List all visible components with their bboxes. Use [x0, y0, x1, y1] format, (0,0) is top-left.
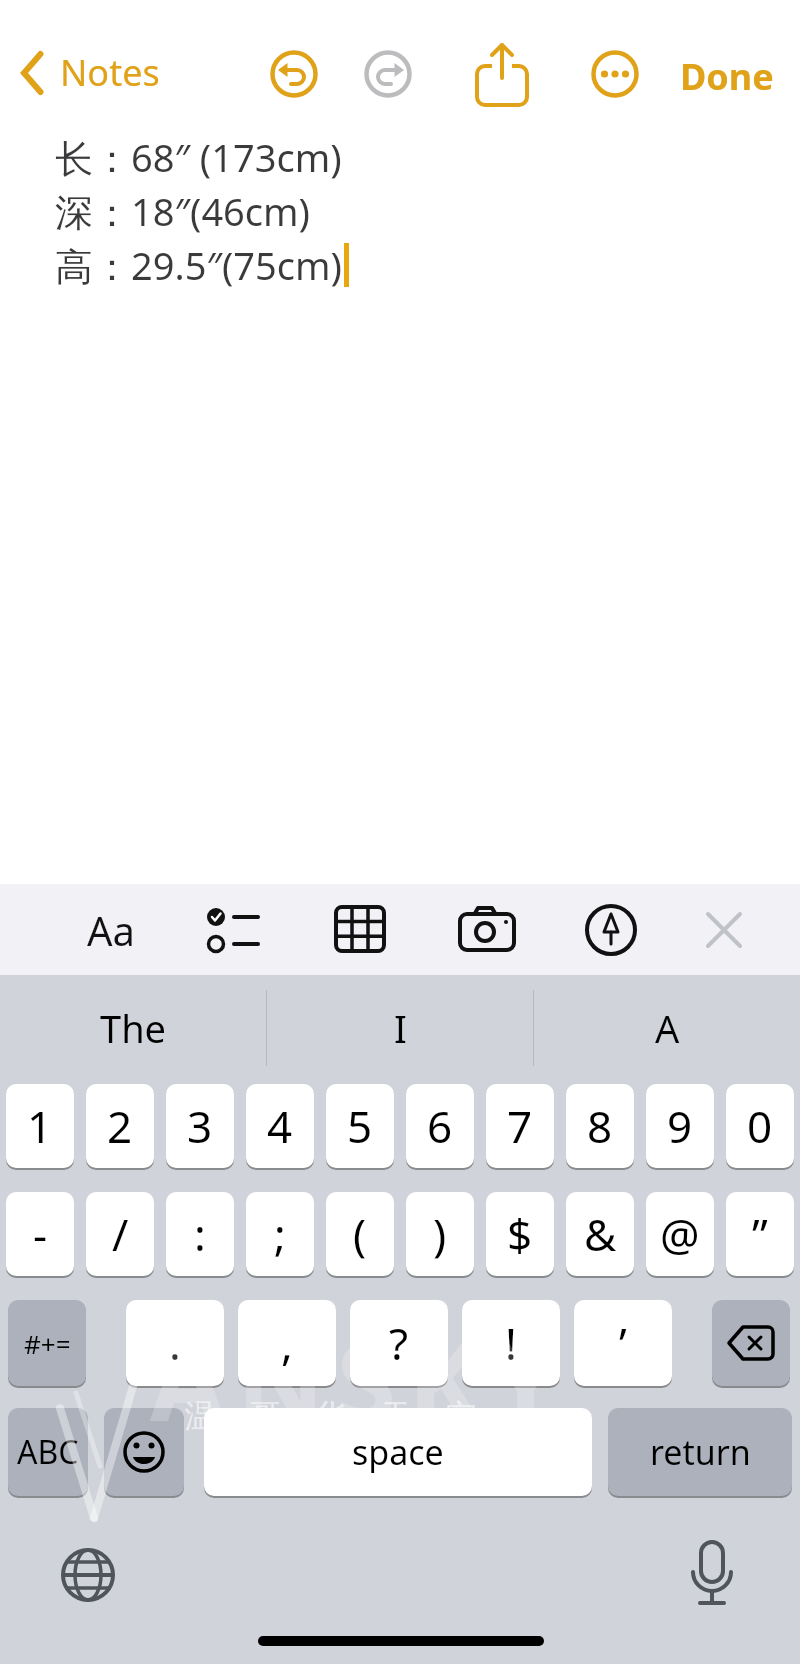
staticText: ’ — [619, 1313, 627, 1373]
staticText: ABC — [17, 1430, 79, 1474]
button[interactable]: 2 — [86, 1084, 154, 1170]
staticText: Done — [680, 52, 774, 101]
button[interactable] — [364, 50, 412, 98]
button[interactable]: - — [6, 1192, 74, 1278]
button[interactable] — [458, 906, 516, 952]
button[interactable]: The — [0, 988, 266, 1068]
staticText: Notes — [60, 48, 160, 97]
button[interactable] — [704, 910, 744, 950]
button[interactable]: ABC — [8, 1408, 88, 1498]
button[interactable]: ) — [406, 1192, 474, 1278]
button[interactable]: 7 — [486, 1084, 554, 1170]
button[interactable]: I — [267, 988, 533, 1068]
button[interactable] — [334, 905, 386, 953]
staticText: 0 — [747, 1096, 773, 1156]
staticText: 9 — [667, 1096, 693, 1156]
staticText: space — [352, 1429, 444, 1475]
button[interactable]: A — [534, 988, 800, 1068]
button[interactable]: 4 — [246, 1084, 314, 1170]
button[interactable]: ( — [326, 1192, 394, 1278]
button[interactable]: Notes — [18, 48, 160, 97]
button[interactable]: #+= — [8, 1300, 86, 1388]
staticText: 2 — [107, 1096, 133, 1156]
staticText: , — [281, 1313, 293, 1373]
staticText: ) — [433, 1204, 447, 1264]
staticText: Aa — [87, 903, 135, 957]
staticText: 温哥华天空 — [168, 1396, 493, 1436]
staticText: 长：68″ (173cm) — [55, 131, 342, 183]
button[interactable]: ! — [462, 1300, 560, 1388]
staticText: / — [112, 1204, 129, 1264]
staticText: . — [169, 1313, 181, 1373]
staticText: @ — [660, 1204, 700, 1264]
button[interactable]: 5 — [326, 1084, 394, 1170]
button[interactable] — [104, 1408, 184, 1498]
button[interactable] — [270, 50, 318, 98]
button[interactable]: : — [166, 1192, 234, 1278]
button[interactable]: & — [566, 1192, 634, 1278]
staticText: 7 — [507, 1096, 533, 1156]
button[interactable]: 9 — [646, 1084, 714, 1170]
staticText: #+= — [24, 1326, 71, 1361]
button[interactable] — [474, 42, 530, 108]
staticText: 3 — [187, 1096, 213, 1156]
staticText: ( — [353, 1204, 367, 1264]
staticText: - — [33, 1204, 48, 1264]
staticText: ANSKY — [150, 1306, 572, 1453]
staticText: $ — [507, 1204, 533, 1264]
button[interactable] — [687, 1540, 737, 1610]
button[interactable]: ? — [350, 1300, 448, 1388]
button[interactable] — [585, 904, 637, 956]
button[interactable]: $ — [486, 1192, 554, 1278]
button[interactable]: Done — [680, 52, 774, 101]
staticText: ! — [505, 1313, 517, 1373]
staticText: The — [100, 1002, 167, 1054]
button[interactable]: space — [204, 1408, 592, 1498]
button[interactable] — [591, 50, 639, 98]
staticText: 1 — [27, 1096, 53, 1156]
staticText: ? — [389, 1313, 409, 1373]
button[interactable]: 8 — [566, 1084, 634, 1170]
button[interactable] — [712, 1300, 790, 1388]
button[interactable]: 0 — [726, 1084, 794, 1170]
staticText: 4 — [267, 1096, 293, 1156]
staticText: return — [650, 1429, 751, 1475]
button[interactable]: return — [608, 1408, 792, 1498]
button[interactable]: 1 — [6, 1084, 74, 1170]
staticText: 6 — [427, 1096, 453, 1156]
button[interactable]: . — [126, 1300, 224, 1388]
button[interactable]: Aa — [83, 900, 139, 960]
staticText: 5 — [347, 1096, 373, 1156]
button[interactable]: 6 — [406, 1084, 474, 1170]
button[interactable]: 3 — [166, 1084, 234, 1170]
staticText: & — [584, 1204, 617, 1264]
staticText: : — [194, 1204, 206, 1264]
button[interactable]: @ — [646, 1192, 714, 1278]
button[interactable]: ; — [246, 1192, 314, 1278]
button[interactable] — [204, 904, 262, 956]
staticText: I — [394, 1002, 407, 1054]
staticText: 深：18″(46cm) — [55, 185, 311, 237]
staticText: ; — [274, 1204, 286, 1264]
button[interactable]: , — [238, 1300, 336, 1388]
staticText: 高：29.5″(75cm) — [55, 239, 342, 291]
staticText: 8 — [587, 1096, 613, 1156]
button[interactable] — [60, 1547, 116, 1603]
staticText: A — [655, 1002, 680, 1054]
staticText: ” — [752, 1204, 768, 1264]
button[interactable]: / — [86, 1192, 154, 1278]
button[interactable]: ’ — [574, 1300, 672, 1388]
button[interactable]: ” — [726, 1192, 794, 1278]
